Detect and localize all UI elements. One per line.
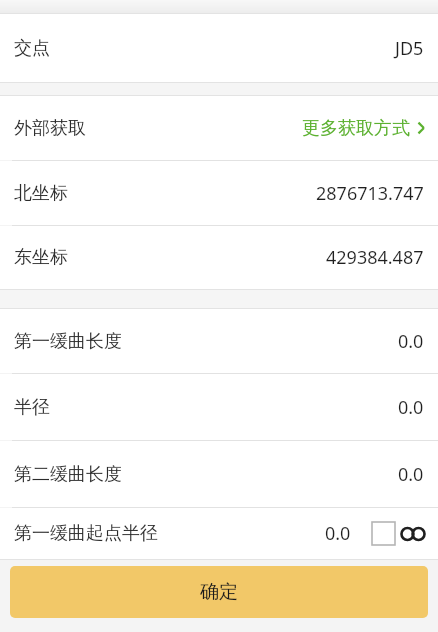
staticText: 0.0 (325, 521, 351, 546)
button[interactable]: 外部获取 (0, 96, 438, 160)
button[interactable]: 北坐标 (0, 161, 438, 225)
staticText: 交点 (14, 37, 50, 60)
staticText: 第一缓曲起点半径 (14, 522, 158, 545)
staticText: JD5 (395, 36, 424, 61)
button[interactable]: 确定 (10, 566, 428, 618)
staticText: 确定 (200, 580, 238, 604)
button[interactable]: 东坐标 (0, 226, 438, 289)
staticText: 外部获取 (14, 117, 86, 140)
button[interactable]: 交点 (0, 14, 438, 82)
staticText: 第一缓曲长度 (14, 330, 122, 353)
staticText: 第二缓曲长度 (14, 463, 122, 486)
staticText: 更多获取方式 (302, 117, 410, 140)
button[interactable]: 第二缓曲长度 (0, 441, 438, 507)
staticText: 东坐标 (14, 246, 68, 269)
staticText: 北坐标 (14, 182, 68, 205)
button[interactable]: Infinite radius checkbox (372, 522, 395, 545)
staticText: 429384.487 (326, 245, 424, 270)
button[interactable]: 半径 (0, 374, 438, 440)
staticText: 0.0 (398, 462, 424, 487)
staticText: 半径 (14, 396, 50, 419)
button[interactable]: 第一缓曲长度 (0, 309, 438, 373)
button[interactable]: 第一缓曲起点半径 (0, 508, 438, 559)
staticText: 2876713.747 (316, 181, 424, 206)
staticText: 0.0 (398, 395, 424, 420)
staticText: 0.0 (398, 329, 424, 354)
